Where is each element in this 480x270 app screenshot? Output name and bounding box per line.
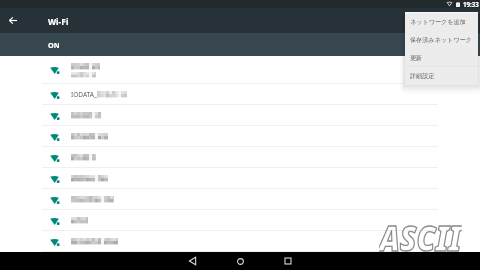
button[interactable]: Home — [220, 252, 260, 270]
button[interactable]: Back — [3, 8, 22, 33]
staticText: Wi-Fi — [48, 16, 69, 27]
staticText: 詳細設定 — [410, 72, 435, 80]
button[interactable]: ネットワークを追加 — [405, 13, 478, 31]
staticText: 更新 — [410, 54, 423, 62]
button[interactable] — [0, 231, 480, 252]
button[interactable]: 更新 — [405, 49, 478, 66]
button[interactable]: 保存済みネットワーク — [405, 31, 478, 49]
button[interactable] — [0, 189, 480, 210]
button[interactable]: Recent apps — [268, 252, 308, 270]
staticText: IODATA_ — [71, 90, 97, 99]
staticText: 19:33 — [463, 0, 479, 8]
staticText: ASCII — [379, 214, 462, 254]
button[interactable]: Back — [172, 252, 212, 270]
staticText: ネットワークを追加 — [410, 18, 466, 26]
button[interactable] — [0, 105, 480, 126]
button[interactable]: IODATA_ — [0, 84, 480, 105]
button[interactable] — [0, 168, 480, 189]
staticText: 保存済みネットワーク — [410, 36, 472, 44]
staticText: ON — [48, 40, 60, 50]
button[interactable]: 詳細設定 — [405, 67, 478, 85]
button[interactable] — [0, 56, 480, 84]
button[interactable] — [0, 210, 480, 231]
button[interactable] — [0, 126, 480, 147]
button[interactable] — [0, 147, 480, 168]
